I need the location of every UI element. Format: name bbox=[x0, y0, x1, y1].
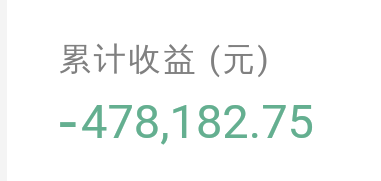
staticText: 累计收益 (元) bbox=[59, 39, 272, 79]
staticText: 478,182.75 bbox=[81, 94, 314, 149]
staticText: - bbox=[59, 85, 77, 160]
button[interactable]: 累计收益 (元) bbox=[59, 39, 272, 79]
button[interactable]: - bbox=[0, 0, 233, 75]
